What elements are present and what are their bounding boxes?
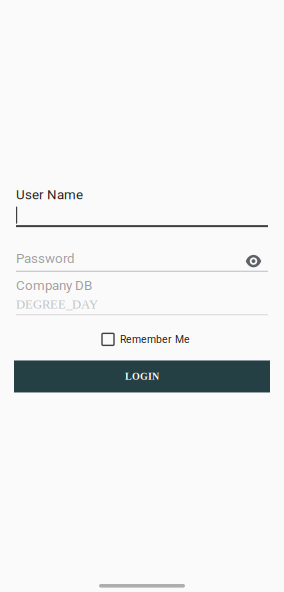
staticText: Company DB: [16, 278, 92, 293]
staticText: LOGIN: [125, 371, 159, 382]
staticText: Remember Me: [120, 333, 190, 345]
button[interactable]: LOGIN: [14, 360, 270, 392]
button[interactable]: Company DB: [16, 278, 268, 315]
staticText: User Name: [16, 187, 83, 203]
button[interactable]: Remember Me: [102, 333, 190, 345]
button[interactable]: User Name: [16, 187, 268, 227]
staticText: Password: [16, 251, 75, 266]
button[interactable]: Password: [16, 251, 268, 272]
staticText: DEGREE_DAY: [16, 297, 98, 311]
button[interactable]: Show password: [240, 248, 266, 274]
